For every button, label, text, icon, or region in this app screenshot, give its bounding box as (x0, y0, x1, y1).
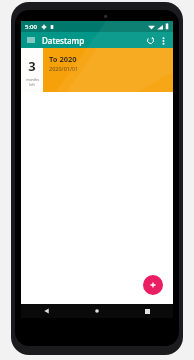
staticText: months (26, 77, 39, 82)
button[interactable]: Refresh (144, 34, 157, 47)
button[interactable]: More options (157, 34, 170, 47)
staticText: Datestamp (42, 35, 85, 46)
button[interactable]: Back (21, 304, 71, 318)
staticText: 2020/01/01 (49, 65, 79, 72)
button[interactable]: Add datestamp (143, 275, 163, 295)
button[interactable]: Recent apps (122, 304, 173, 318)
staticText: To 2020 (49, 54, 77, 64)
button[interactable]: 3 (21, 48, 173, 92)
button[interactable]: Home (71, 304, 122, 318)
button[interactable]: Open navigation drawer (25, 34, 37, 46)
staticText: 5:00 (25, 23, 37, 31)
staticText: 3 (28, 57, 36, 75)
staticText: left (29, 82, 35, 87)
